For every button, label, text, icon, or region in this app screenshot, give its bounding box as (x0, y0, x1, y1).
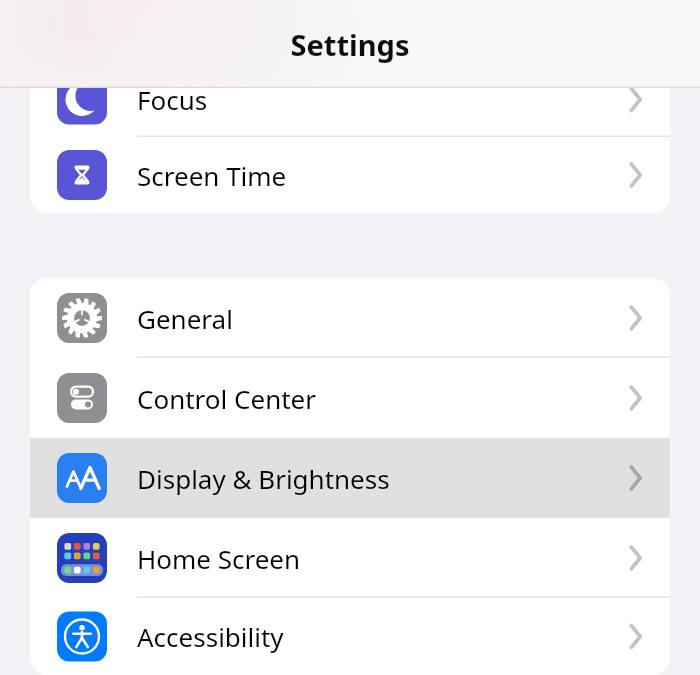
staticText: Focus (137, 82, 208, 117)
button[interactable]: Home Screen (30, 518, 670, 598)
button[interactable]: Screen Time (30, 137, 670, 213)
staticText: Accessibility (137, 619, 284, 654)
staticText: Settings (0, 25, 700, 64)
button[interactable]: General (30, 278, 670, 358)
button[interactable]: Focus (30, 62, 670, 137)
staticText: Control Center (137, 381, 316, 416)
staticText: Screen Time (137, 158, 287, 193)
button[interactable]: Display & Brightness (30, 438, 670, 518)
staticText: General (137, 301, 233, 336)
staticText: Home Screen (137, 541, 301, 576)
staticText: Display & Brightness (137, 461, 390, 496)
button[interactable]: Accessibility (30, 598, 670, 675)
button[interactable]: Control Center (30, 358, 670, 438)
